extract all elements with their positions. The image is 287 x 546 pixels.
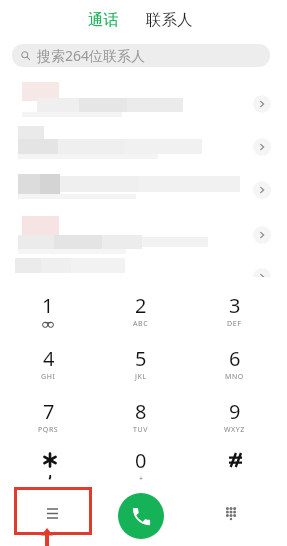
button[interactable]: 详情: [0, 124, 287, 168]
staticText: TUV: [133, 425, 149, 435]
button[interactable]: [4, 447, 96, 487]
button[interactable]: 8: [95, 398, 187, 442]
button[interactable]: 详情: [253, 268, 271, 286]
staticText: PQRS: [38, 425, 59, 435]
button[interactable]: 拨号: [118, 493, 164, 539]
staticText: 2: [135, 292, 147, 319]
staticText: 1: [42, 292, 54, 319]
staticText: GHI: [41, 372, 56, 382]
button[interactable]: 通话: [81, 6, 126, 32]
button[interactable]: 5: [95, 345, 187, 389]
staticText: 5: [135, 345, 147, 372]
button[interactable]: 详情: [0, 212, 287, 256]
staticText: 7: [43, 398, 55, 425]
button[interactable]: 详情: [253, 138, 271, 156]
button[interactable]: 4: [2, 345, 94, 389]
button[interactable]: 详情: [0, 168, 287, 212]
staticText: DEF: [227, 319, 242, 329]
staticText: +: [139, 474, 144, 484]
staticText: ABC: [133, 319, 149, 329]
staticText: 9: [229, 398, 241, 425]
button[interactable]: 7: [2, 398, 94, 442]
button[interactable]: 9: [188, 398, 280, 442]
staticText: 6: [229, 345, 241, 372]
button[interactable]: 拨号键盘: [208, 493, 254, 539]
staticText: 3: [229, 292, 241, 319]
staticText: 联系人: [146, 10, 193, 28]
staticText: JKL: [135, 372, 147, 382]
button[interactable]: [189, 447, 281, 487]
button[interactable]: 详情: [253, 226, 271, 244]
button[interactable]: 详情: [253, 181, 271, 199]
button[interactable]: 1: [2, 292, 94, 336]
staticText: WXYZ: [224, 425, 245, 435]
button[interactable]: 详情: [0, 256, 287, 286]
button[interactable]: 搜索264位联系人: [12, 44, 270, 67]
button[interactable]: 详情: [0, 80, 287, 124]
staticText: 4: [43, 345, 55, 372]
button[interactable]: 联系人: [139, 6, 200, 32]
button[interactable]: 3: [188, 292, 280, 336]
button[interactable]: 6: [188, 345, 280, 389]
button[interactable]: 2: [95, 292, 187, 336]
staticText: 搜索264位联系人: [37, 46, 146, 65]
staticText: 通话: [88, 10, 119, 28]
staticText: 8: [135, 398, 147, 425]
button[interactable]: 详情: [253, 95, 271, 113]
staticText: MNO: [225, 372, 244, 382]
staticText: 0: [135, 447, 147, 474]
button[interactable]: 菜单: [14, 487, 92, 535]
button[interactable]: 0: [95, 447, 187, 491]
